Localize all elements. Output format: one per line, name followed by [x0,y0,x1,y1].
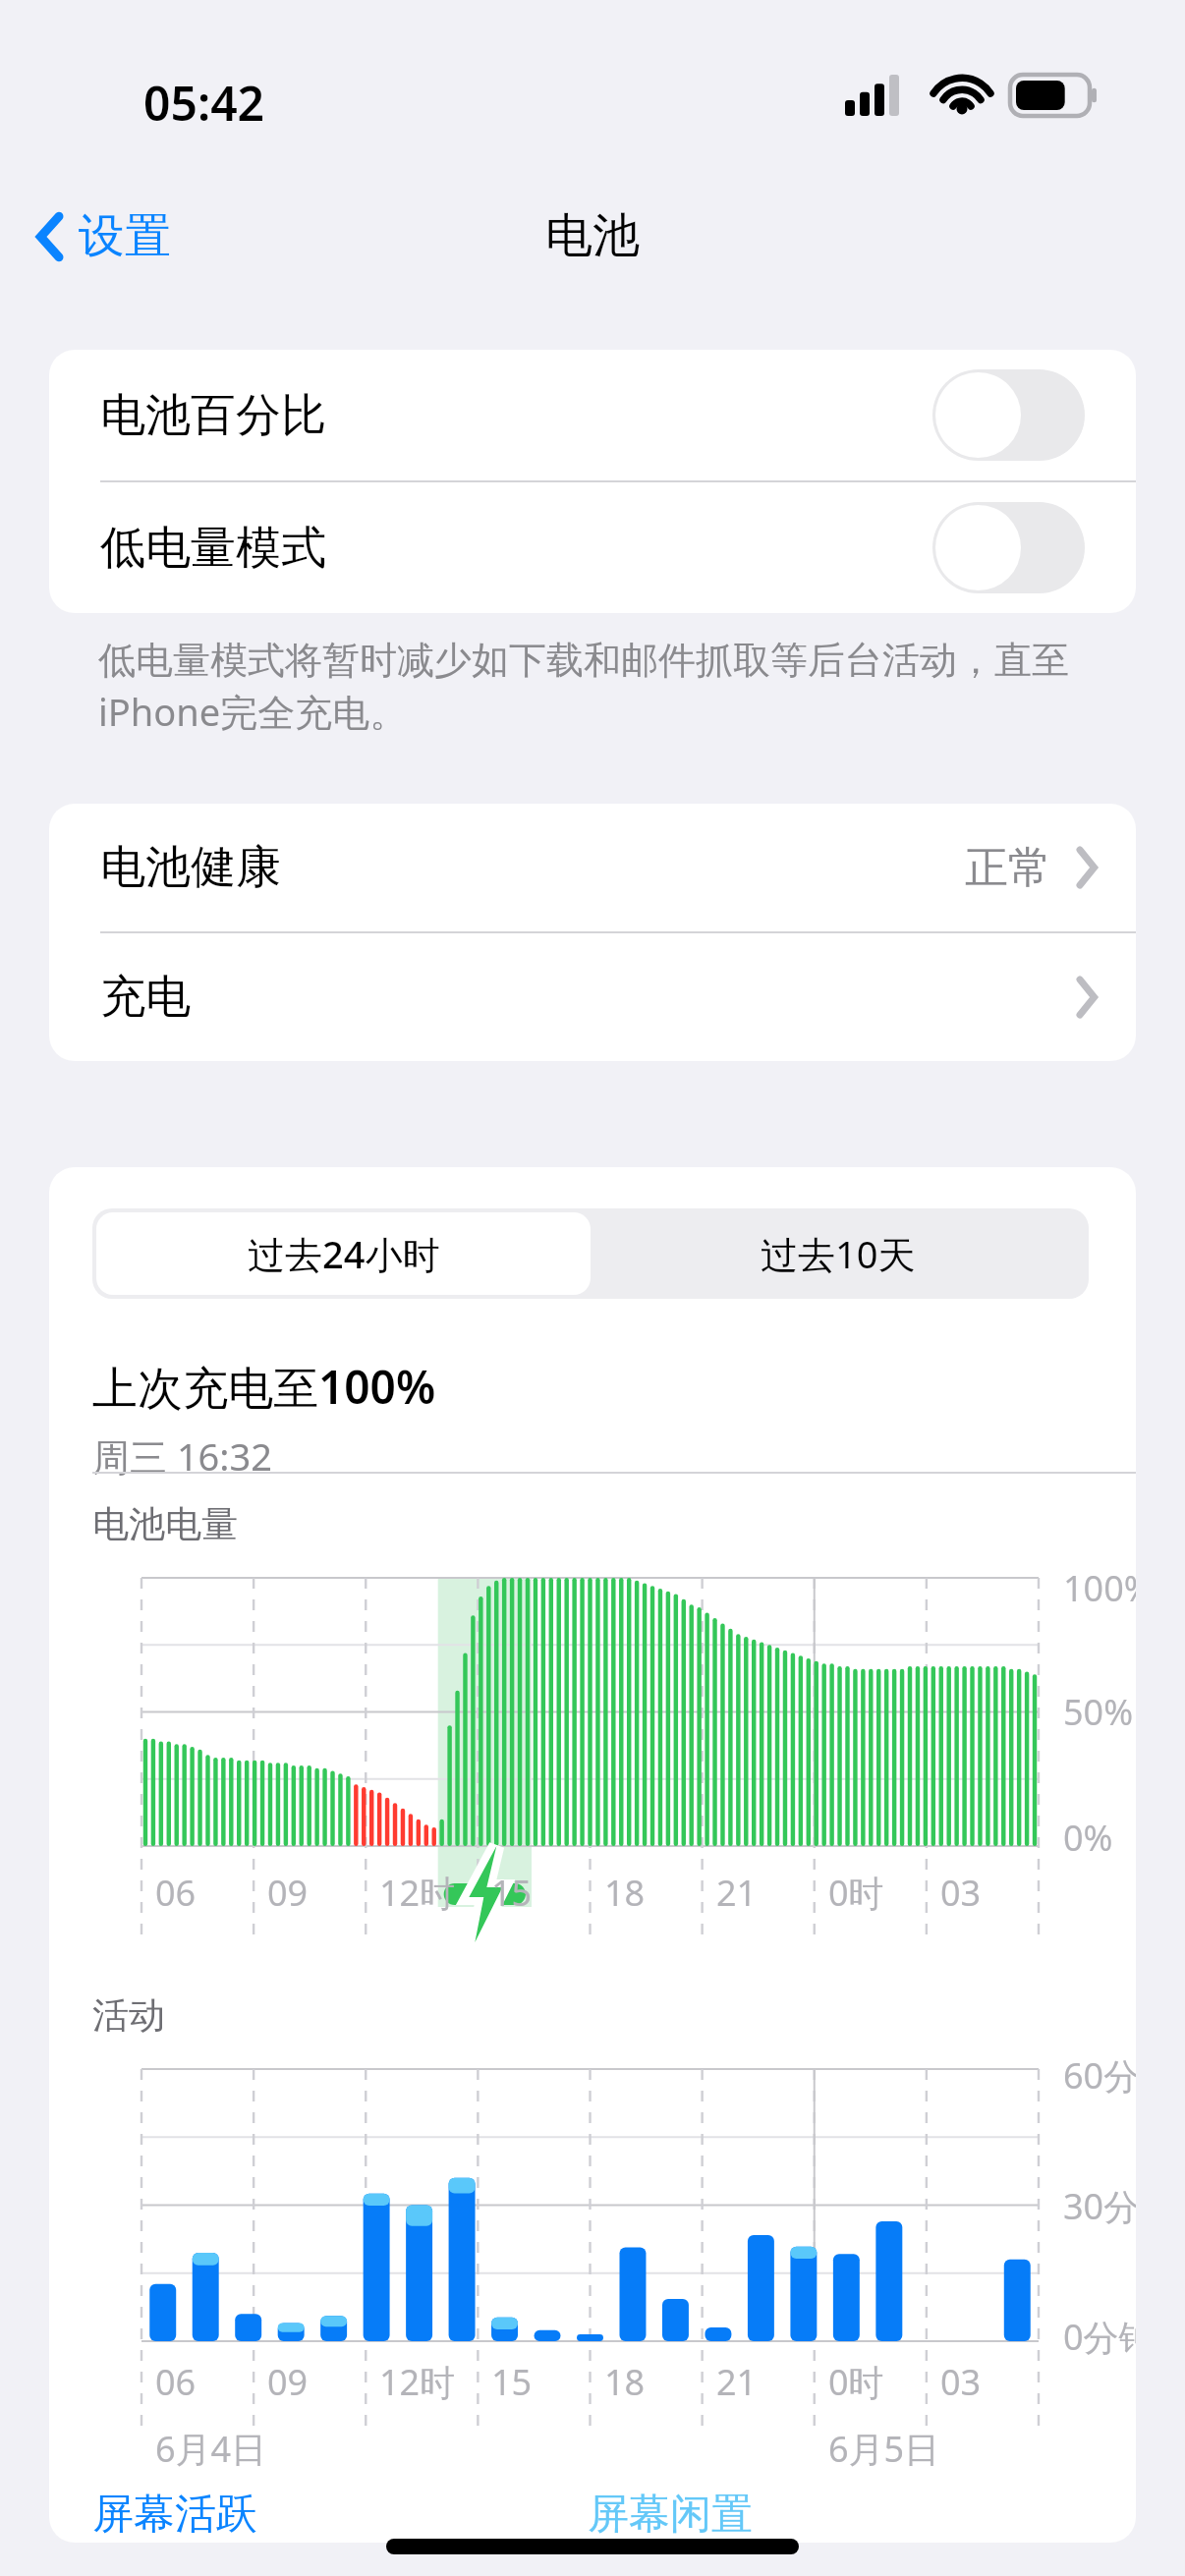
staticText: 0分钟 [1063,2313,1136,2361]
staticText: 充电 [100,969,191,1026]
button[interactable]: 过去10天 [591,1212,1085,1295]
staticText: 电池健康 [100,839,281,896]
staticText: 03 [940,2358,982,2406]
button[interactable]: 低电量模式 [49,482,1136,613]
staticText: 活动 [92,1992,165,2039]
staticText: 06 [155,2358,197,2406]
staticText: 低电量模式将暂时减少如下载和邮件抓取等后台活动，直至 iPhone完全充电。 [98,637,1091,737]
staticText: 过去24小时 [248,1228,440,1279]
button[interactable]: 过去24小时 [96,1212,591,1295]
staticText: 低电量模式 [100,520,326,577]
staticText: 周三 16:32 [92,1430,273,1482]
staticText: 15 [491,1869,533,1917]
staticText: 6月4日 [155,2425,267,2473]
button[interactable]: 设置 [24,199,183,273]
staticText: 电池电量 [92,1501,238,1547]
staticText: 21 [716,1869,758,1917]
button[interactable]: 电池健康 [49,804,1136,931]
staticText: 电池百分比 [100,387,326,444]
staticText: 0时 [828,1869,884,1917]
staticText: 正常 [965,841,1051,895]
staticText: 09 [267,1869,309,1917]
button[interactable]: 充电 [49,933,1136,1061]
staticText: 100% [1063,1564,1136,1612]
staticText: 15 [491,2358,533,2406]
staticText: 09 [267,2358,309,2406]
staticText: 60分钟 [1063,2051,1136,2100]
staticText: 屏幕闲置 [588,2489,753,2541]
staticText: 18 [604,2358,646,2406]
staticText: 过去10天 [761,1228,916,1279]
button[interactable]: 电池百分比 [49,350,1136,480]
staticText: 30分钟 [1063,2182,1136,2230]
staticText: 电池 [545,206,640,265]
staticText: 上次充电至100% [92,1356,436,1418]
staticText: 05:42 [143,71,265,135]
staticText: 6月5日 [828,2425,940,2473]
staticText: 50% [1063,1688,1134,1736]
staticText: 12时 [379,2358,456,2406]
staticText: 0% [1063,1814,1113,1862]
staticText: 屏幕活跃 [92,2489,257,2541]
staticText: 06 [155,1869,197,1917]
staticText: 03 [940,1869,982,1917]
staticText: 18 [604,1869,646,1917]
staticText: 0时 [828,2358,884,2406]
staticText: 设置 [79,207,171,265]
staticText: 21 [716,2358,758,2406]
staticText: 12时 [379,1869,456,1917]
